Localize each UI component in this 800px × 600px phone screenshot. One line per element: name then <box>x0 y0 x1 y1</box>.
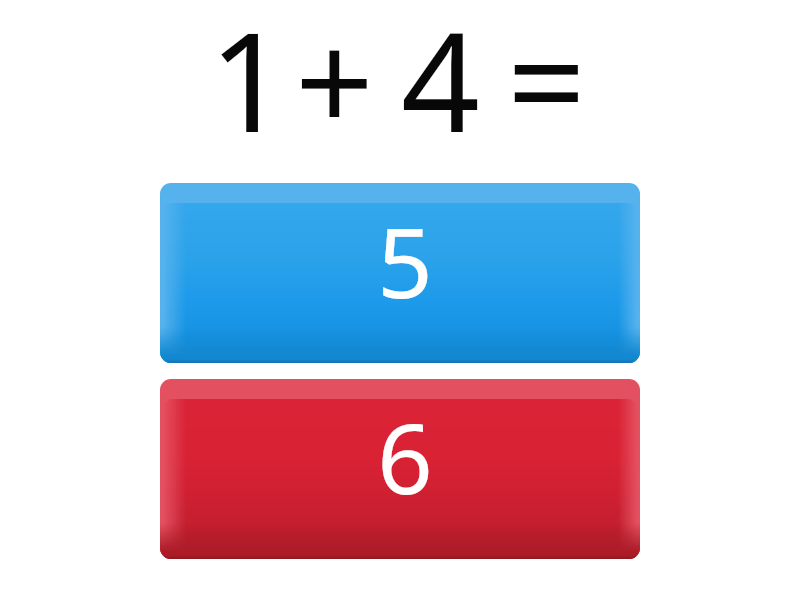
staticText: 1 <box>209 0 288 172</box>
staticText: 4 <box>401 0 480 172</box>
staticText: + <box>295 0 374 172</box>
staticText: 5 <box>377 194 433 326</box>
button[interactable]: Answer 6 <box>160 379 640 559</box>
staticText: = <box>507 0 586 172</box>
staticText: 6 <box>377 390 433 522</box>
button[interactable]: Answer 5 <box>160 183 640 363</box>
